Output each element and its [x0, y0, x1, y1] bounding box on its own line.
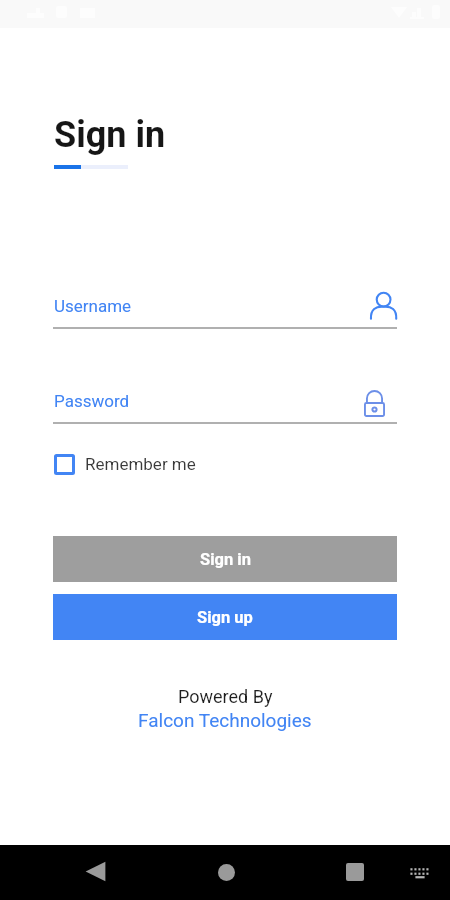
- button[interactable]: Recent apps: [331, 848, 379, 896]
- button[interactable]: Sign up: [53, 594, 397, 640]
- staticText: Powered By: [178, 686, 273, 707]
- staticText: Sign up: [197, 608, 253, 627]
- button[interactable]: Remember me: [54, 451, 196, 477]
- staticText: Remember me: [85, 454, 196, 474]
- staticText: Username: [54, 296, 132, 316]
- staticText: Password: [54, 391, 130, 411]
- staticText: Sign in: [54, 114, 166, 156]
- button[interactable]: Back: [71, 847, 119, 895]
- other: Password: [364, 390, 385, 417]
- other: User: [366, 289, 398, 321]
- button[interactable]: Falcon Technologies: [138, 709, 312, 731]
- button[interactable]: Sign in: [53, 536, 397, 582]
- button[interactable]: Home: [202, 848, 250, 896]
- button[interactable]: Change keyboard: [404, 856, 436, 888]
- staticText: Sign in: [200, 550, 251, 569]
